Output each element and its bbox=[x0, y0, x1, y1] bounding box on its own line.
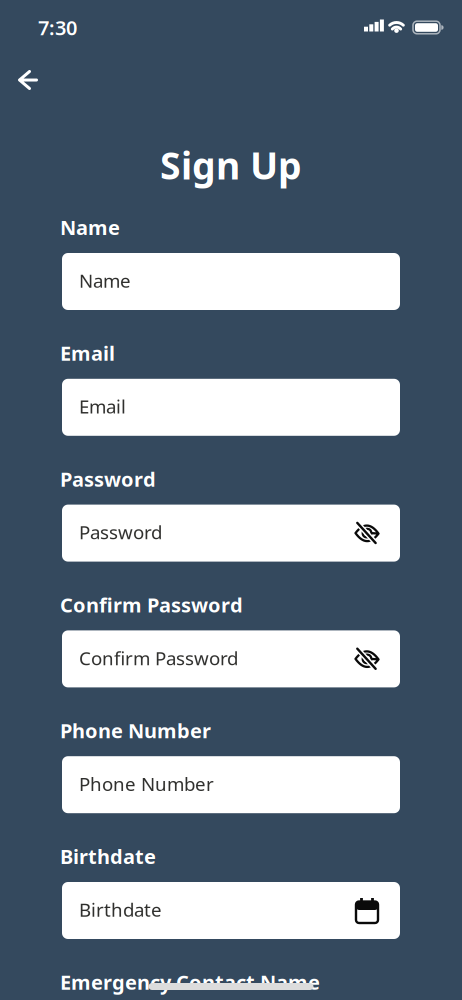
staticText: Name bbox=[60, 214, 120, 241]
button[interactable]: Phone Number bbox=[62, 756, 400, 813]
staticText: Name bbox=[79, 268, 131, 293]
staticText: Birthdate bbox=[79, 897, 162, 922]
staticText: Sign Up bbox=[160, 140, 302, 190]
textField[interactable]: Birthdate bbox=[79, 897, 355, 922]
staticText: Email bbox=[60, 340, 115, 366]
staticText: Phone Number bbox=[60, 717, 211, 744]
button[interactable]: Email bbox=[62, 379, 400, 436]
textField[interactable]: Email bbox=[79, 394, 379, 419]
staticText: Password bbox=[60, 466, 156, 492]
button[interactable]: Back bbox=[8, 60, 47, 99]
staticText: Phone Number bbox=[79, 771, 214, 796]
button[interactable]: Show password bbox=[355, 648, 379, 670]
staticText: Confirm Password bbox=[79, 645, 238, 670]
textField[interactable]: Phone Number bbox=[79, 771, 379, 796]
button[interactable]: Confirm Password bbox=[62, 630, 400, 687]
staticText: 7:30 bbox=[38, 14, 77, 41]
button[interactable]: Password bbox=[62, 505, 400, 562]
staticText: Confirm Password bbox=[60, 591, 243, 618]
textField[interactable]: Name bbox=[79, 268, 379, 293]
textField[interactable]: Confirm Password bbox=[79, 645, 355, 670]
textField[interactable]: Password bbox=[79, 520, 355, 544]
button[interactable]: Birthdate bbox=[62, 882, 400, 939]
staticText: Password bbox=[79, 520, 162, 544]
button[interactable]: Name bbox=[62, 253, 400, 310]
staticText: Emergency Contact Name bbox=[60, 969, 320, 995]
button[interactable]: Show password bbox=[355, 522, 379, 544]
staticText: Email bbox=[79, 394, 126, 419]
staticText: Birthdate bbox=[60, 843, 156, 870]
